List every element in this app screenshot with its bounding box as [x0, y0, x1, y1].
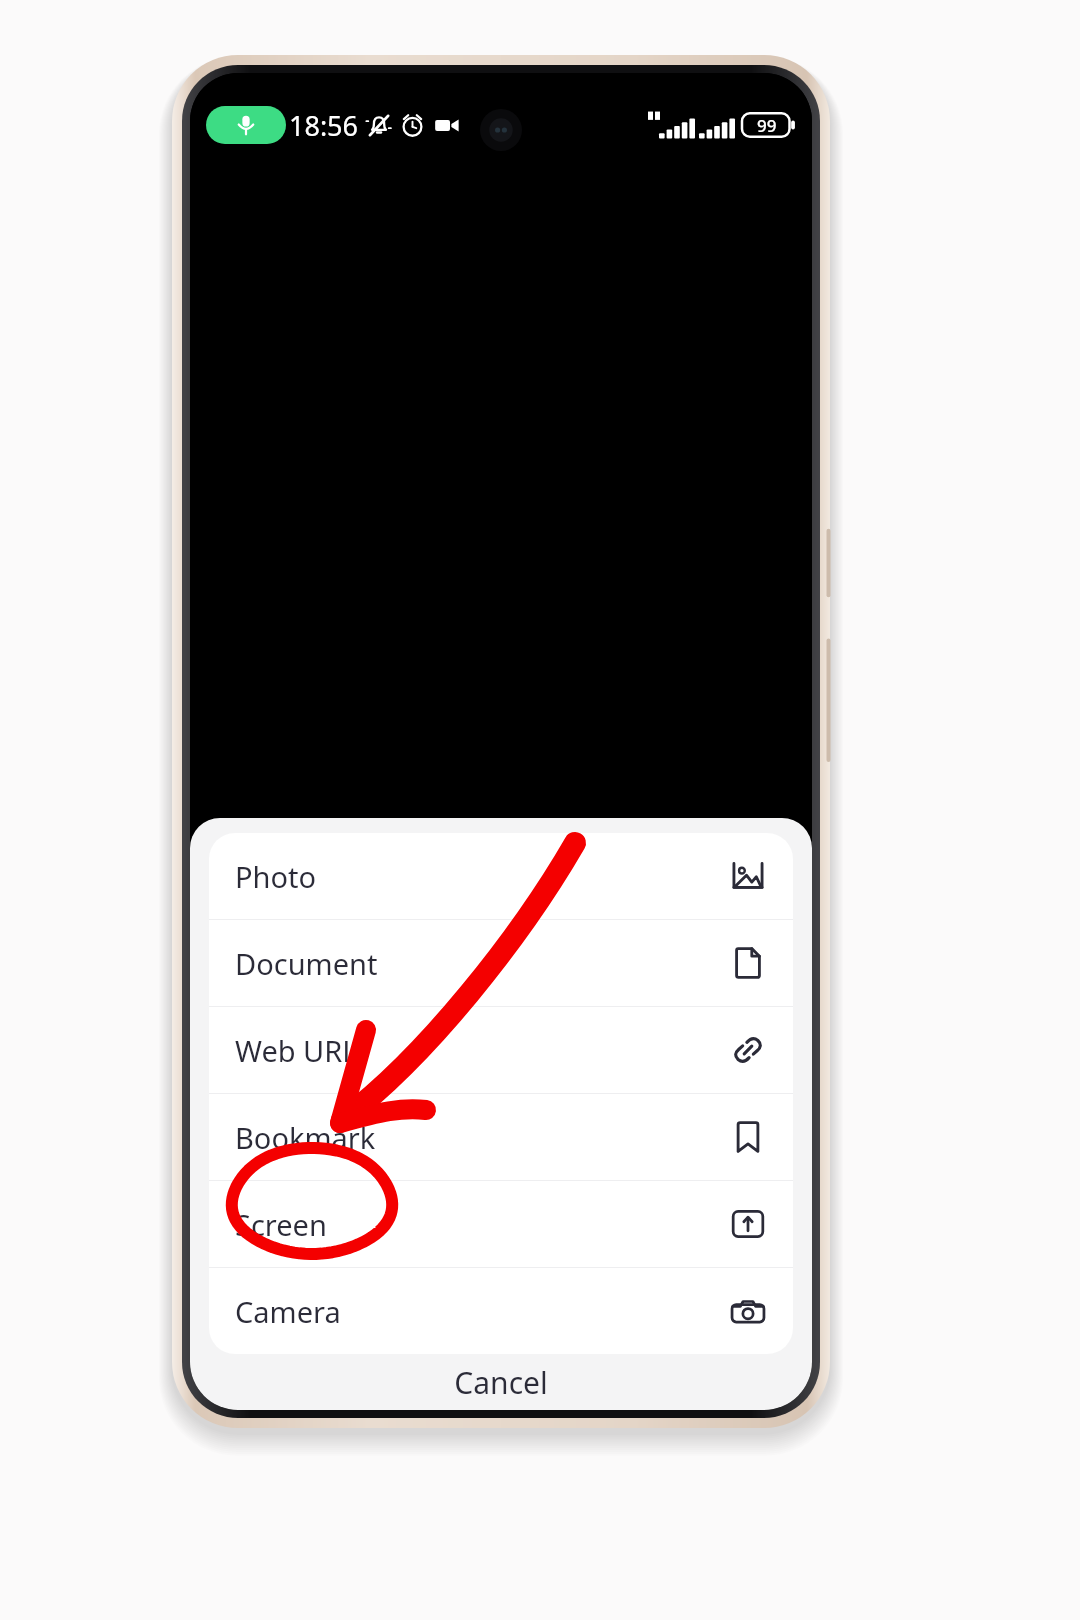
staticText: Bookmark: [235, 1118, 376, 1157]
staticText: Document: [235, 944, 378, 983]
button[interactable]: Web URL: [209, 1007, 793, 1093]
button[interactable]: Photo: [209, 833, 793, 919]
button[interactable]: Camera: [209, 1268, 793, 1354]
button[interactable]: Screen: [209, 1181, 793, 1267]
staticText: Screen: [235, 1205, 327, 1244]
staticText: Photo: [235, 857, 317, 896]
button[interactable]: Document: [209, 920, 793, 1006]
button[interactable]: Microphone in use: [206, 106, 286, 144]
staticText: 99: [757, 114, 777, 137]
staticText: 18:56: [289, 107, 359, 144]
button[interactable]: Bookmark: [209, 1094, 793, 1180]
staticText: Camera: [235, 1292, 341, 1331]
button[interactable]: Cancel: [190, 1354, 812, 1410]
staticText: Cancel: [454, 1362, 548, 1403]
staticText: Web URL: [235, 1031, 358, 1070]
